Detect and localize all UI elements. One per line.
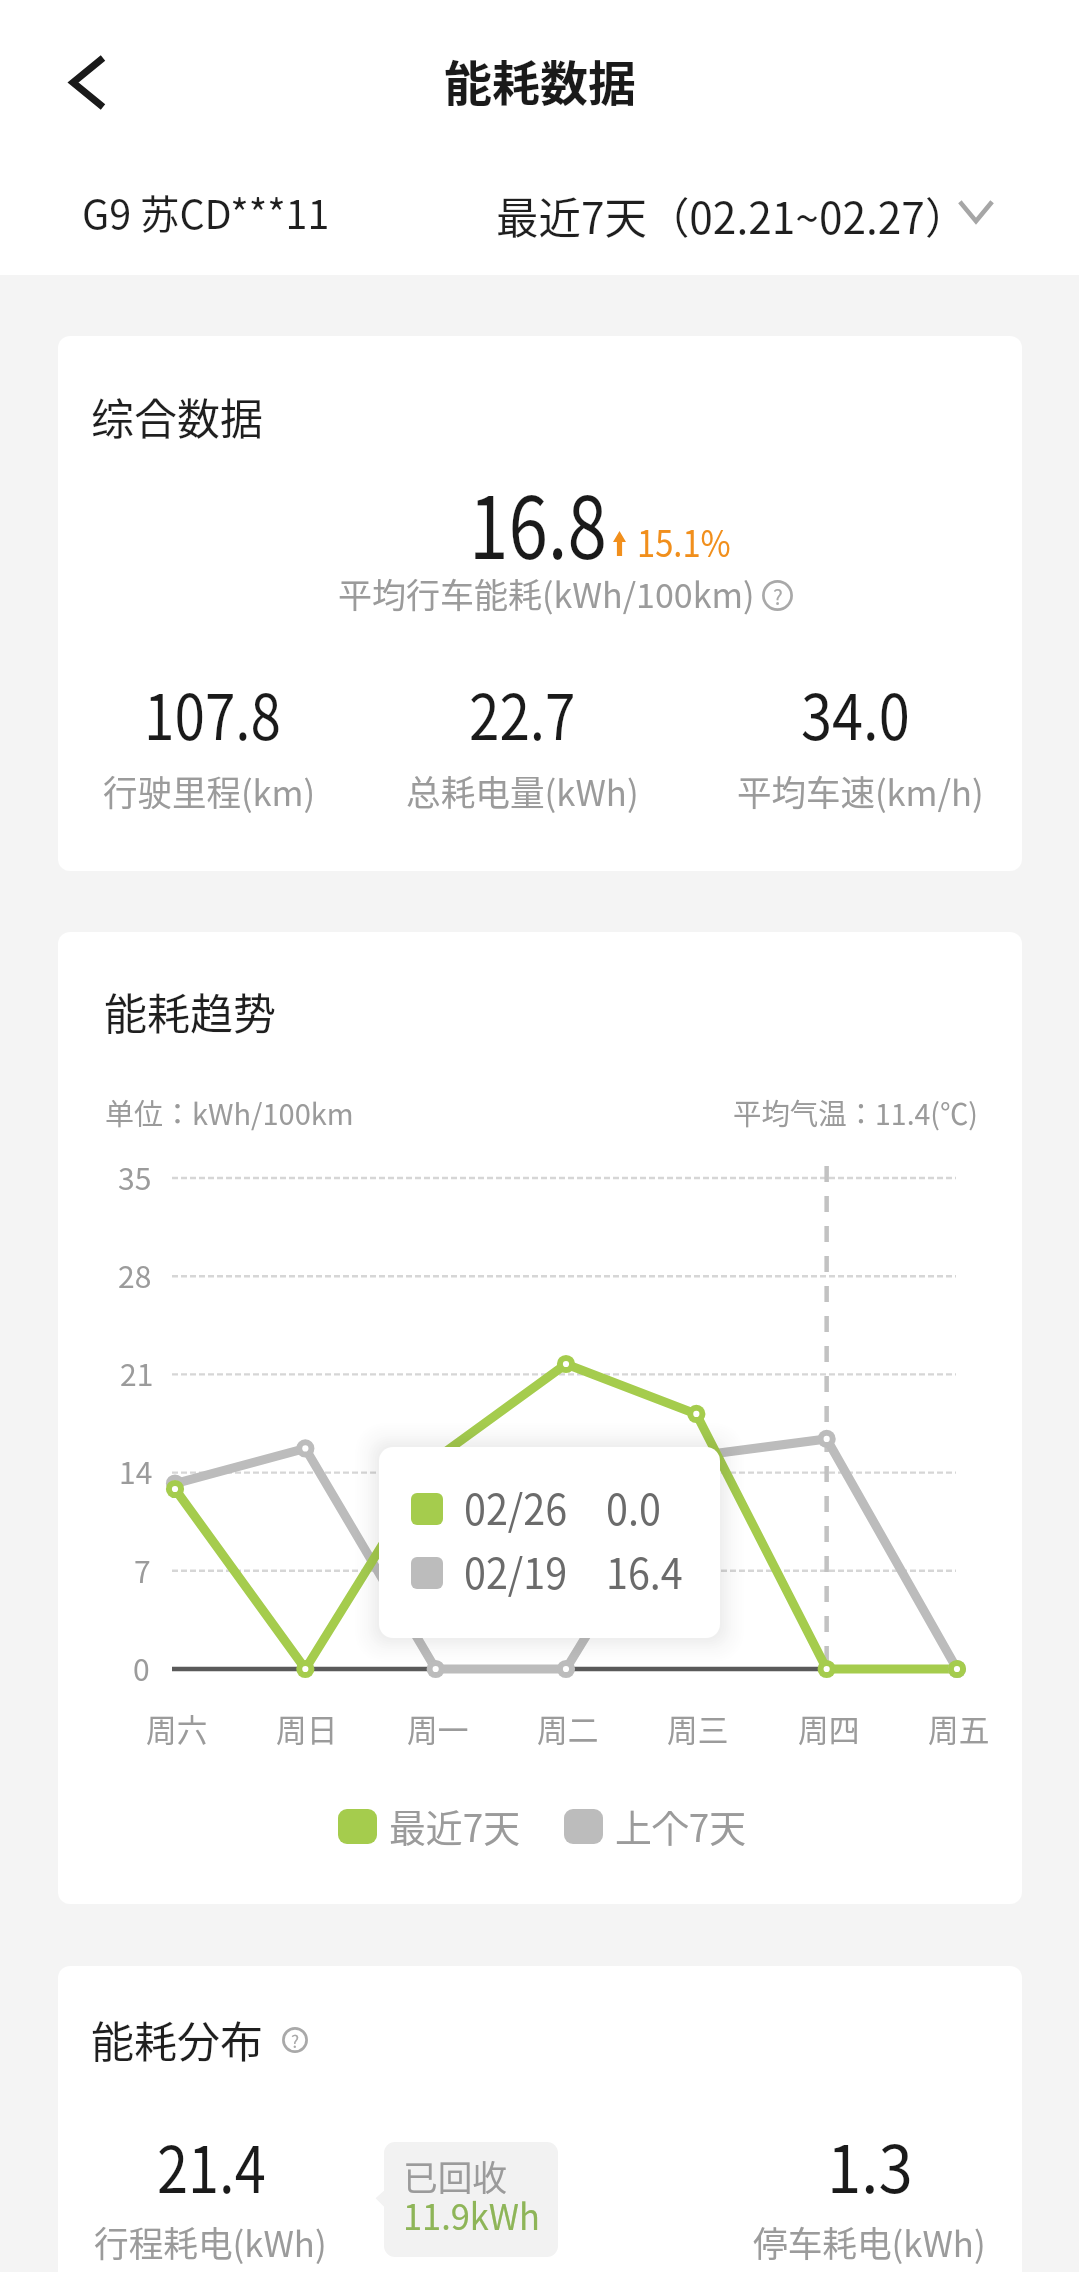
button[interactable]: 说明 — [762, 580, 793, 611]
staticText: 21.4 — [157, 2119, 266, 2212]
staticText: 1.3 — [827, 2118, 913, 2212]
staticText: 22.7 — [469, 667, 576, 758]
staticText: 周四 — [798, 1705, 860, 1751]
staticText: 平均行车能耗(kWh/100km) — [338, 569, 755, 618]
button[interactable]: G9 苏CD***11 — [82, 186, 333, 244]
staticText: 14 — [119, 1449, 153, 1492]
staticText: 34.0 — [801, 667, 910, 758]
staticText: 周六 — [146, 1705, 208, 1751]
staticText: 15.1% — [637, 514, 731, 568]
staticText: ? — [291, 2028, 300, 2053]
staticText: 周一 — [407, 1705, 469, 1751]
staticText: 7 — [134, 1548, 151, 1591]
staticText: 107.8 — [144, 667, 282, 758]
staticText: 行驶里程(km) — [103, 765, 316, 816]
staticText: 综合数据 — [91, 385, 263, 447]
staticText: 02/19 — [464, 1540, 567, 1601]
staticText: 11.9kWh — [403, 2188, 541, 2240]
staticText: ? — [773, 581, 783, 611]
button[interactable]: 最近7天（02.21~02.27） — [496, 182, 974, 244]
staticText: G9 苏CD***11 — [82, 183, 330, 241]
staticText: 周三 — [667, 1705, 729, 1751]
staticText: 单位：kWh/100km — [105, 1091, 354, 1133]
staticText: 16.8 — [469, 459, 608, 584]
staticText: 最近7天（02.21~02.27） — [496, 184, 968, 246]
staticText: 02/26 — [464, 1476, 567, 1537]
staticText: 行程耗电(kWh) — [94, 2216, 327, 2267]
staticText: 平均车速(km/h) — [737, 765, 984, 816]
staticText: 能耗分布 — [91, 2008, 263, 2070]
button[interactable]: Back — [40, 35, 135, 130]
staticText: 0.0 — [606, 1476, 661, 1537]
button[interactable]: 选择时间范围 — [957, 199, 995, 227]
staticText: 上个7天 — [615, 1798, 747, 1853]
staticText: 能耗趋势 — [104, 980, 276, 1042]
staticText: 已回收 — [403, 2150, 508, 2201]
staticText: 16.4 — [606, 1540, 683, 1601]
staticText: 能耗数据 — [444, 45, 637, 115]
staticText: 总耗电量(kWh) — [406, 765, 639, 816]
button[interactable]: 说明 — [282, 2027, 308, 2053]
staticText: 0 — [133, 1646, 150, 1689]
staticText: 平均气温：11.4(℃) — [733, 1091, 978, 1133]
staticText: 停车耗电(kWh) — [753, 2216, 986, 2267]
staticText: 最近7天 — [389, 1798, 521, 1853]
staticText: 周五 — [928, 1705, 990, 1751]
staticText: 周日 — [276, 1705, 338, 1751]
staticText: 35 — [118, 1155, 152, 1198]
staticText: 周二 — [537, 1705, 599, 1751]
staticText: 21 — [120, 1351, 154, 1394]
staticText: 28 — [118, 1253, 152, 1296]
